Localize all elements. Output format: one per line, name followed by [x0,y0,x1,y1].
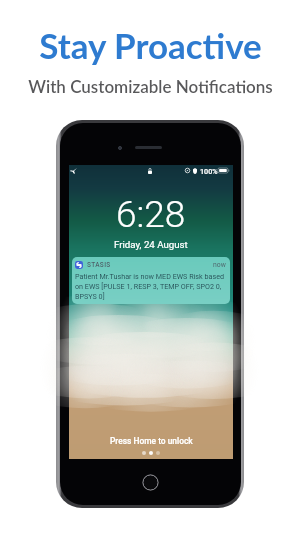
button[interactable]: STASIS [72,257,230,304]
staticText: Friday, 24 August [114,239,188,250]
staticText: Press Home to unlock [110,436,193,446]
staticText: STASIS [87,261,111,269]
staticText: 6:28 [116,193,186,236]
staticText: 100% [200,167,218,175]
staticText: With Customizable Notifications [28,76,273,96]
staticText: now [213,261,226,269]
button[interactable]: Home [142,474,159,491]
staticText: Patient Mr.Tushar is now MED EWS Risk ba… [75,272,226,300]
staticText: Stay Proactive [39,24,262,66]
